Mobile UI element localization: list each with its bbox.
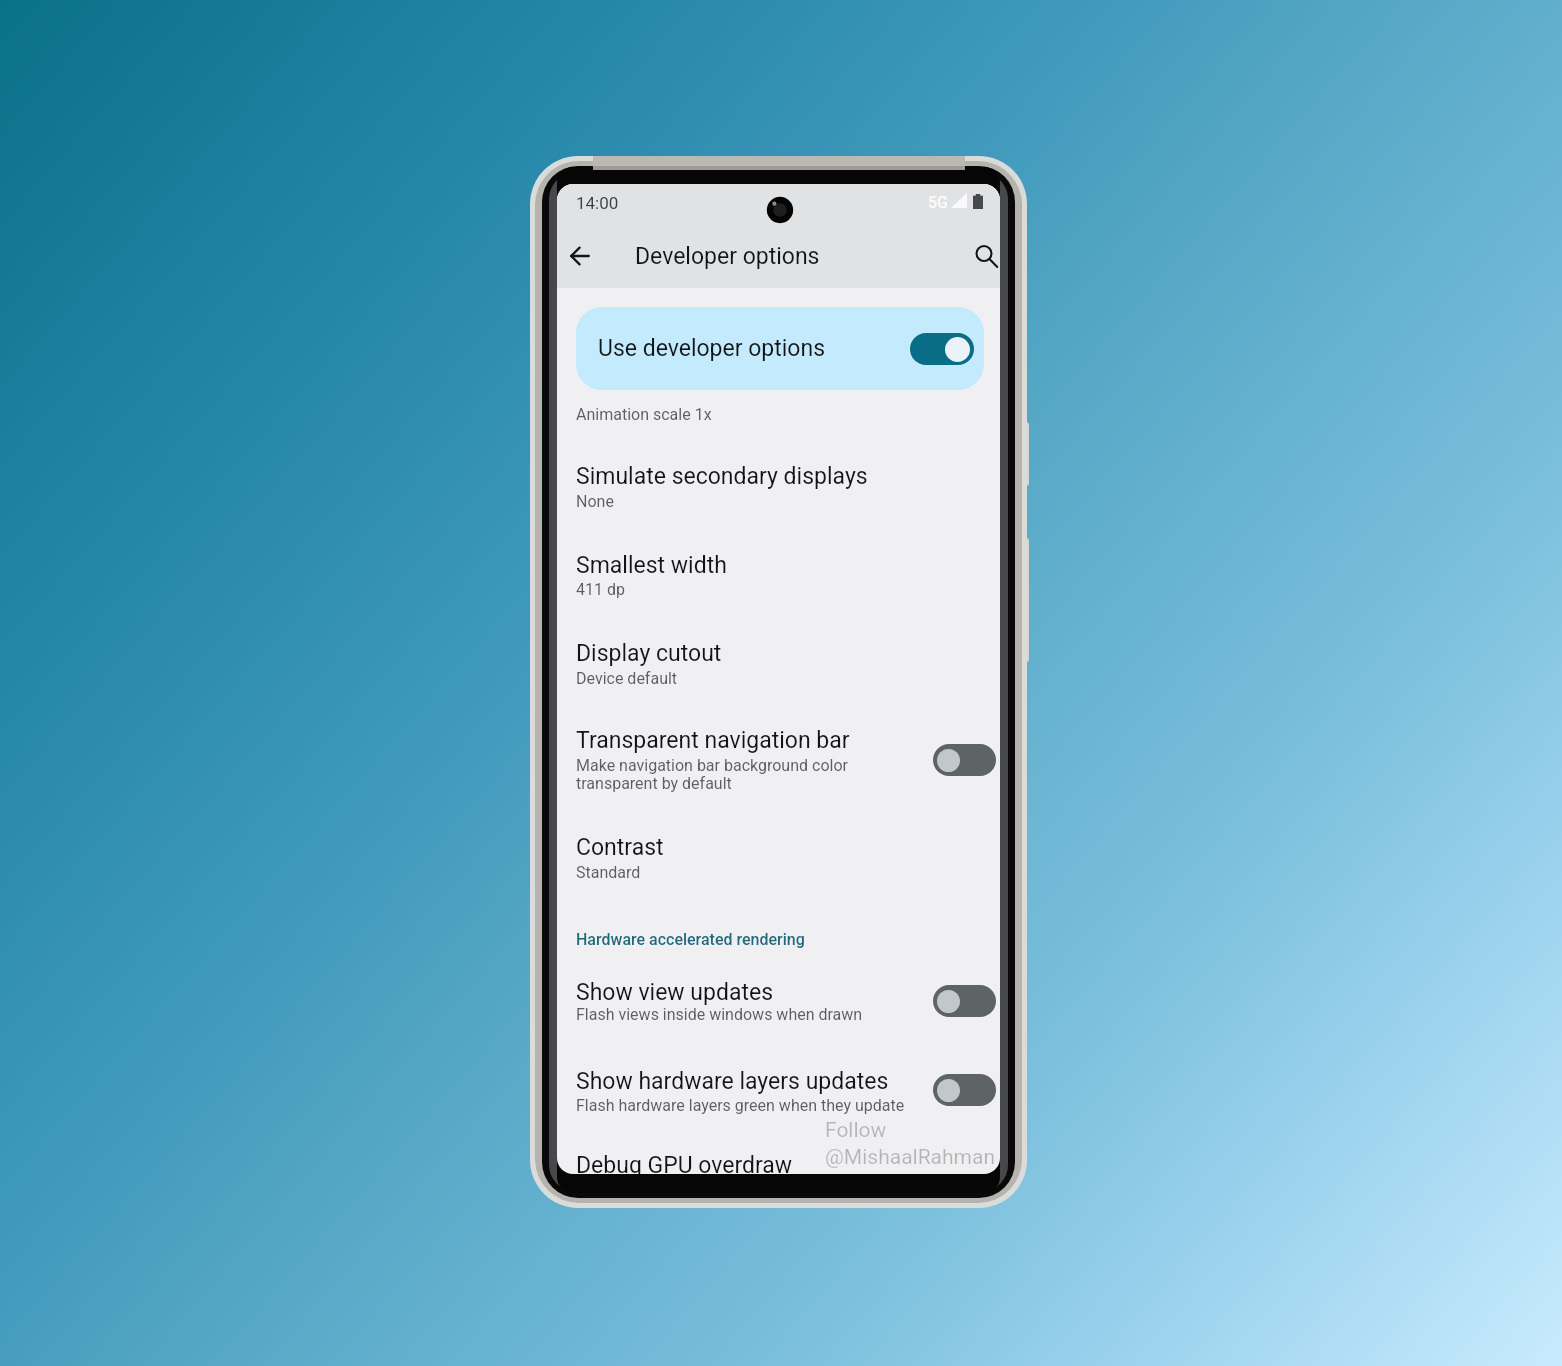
staticText: Make navigation bar background color tra…	[576, 756, 848, 793]
staticText: Standard	[576, 863, 641, 882]
button[interactable]: Use developer options	[576, 307, 984, 390]
staticText: 411 dp	[576, 580, 625, 599]
button[interactable]: Simulate secondary displays	[557, 449, 1000, 521]
staticText: Show view updates	[576, 979, 774, 1006]
staticText: None	[576, 492, 614, 511]
staticText: Transparent navigation bar	[576, 727, 850, 754]
button[interactable]: Contrast	[557, 820, 1000, 892]
staticText: Display cutout	[576, 640, 722, 667]
button[interactable]: Display cutout	[557, 626, 1000, 698]
staticText: 5G	[928, 193, 948, 212]
staticText: Flash views inside windows when drawn	[576, 1005, 863, 1024]
button[interactable]: Transparent navigation bar	[557, 713, 1000, 785]
staticText: Flash hardware layers green when they up…	[576, 1096, 905, 1115]
button[interactable]: Show view updates toggle	[933, 985, 996, 1017]
staticText: Contrast	[576, 834, 664, 861]
button[interactable]: Show hardware layers updates toggle	[933, 1074, 996, 1106]
staticText: Smallest width	[576, 552, 727, 579]
button[interactable]: Use developer options toggle	[910, 333, 974, 365]
staticText: Use developer options	[598, 335, 826, 362]
staticText: Hardware accelerated rendering	[576, 930, 805, 949]
button[interactable]: Debug GPU overdraw	[557, 1138, 1000, 1174]
button[interactable]: Navigate up	[560, 236, 600, 276]
button[interactable]: Transparent navigation bar toggle	[933, 744, 996, 776]
button[interactable]: Search	[966, 236, 1000, 276]
staticText: Developer options	[635, 243, 820, 270]
staticText: Animation scale 1x	[576, 405, 712, 424]
staticText: Debug GPU overdraw	[576, 1152, 793, 1174]
staticText: Show hardware layers updates	[576, 1068, 889, 1095]
staticText: @MishaalRahman	[825, 1145, 996, 1170]
button[interactable]: Smallest width	[557, 538, 1000, 609]
staticText: Device default	[576, 669, 678, 688]
button[interactable]: Show hardware layers updates	[557, 1054, 1000, 1125]
staticText: Follow	[825, 1118, 887, 1143]
button[interactable]: Show view updates	[557, 965, 1000, 1034]
staticText: 14:00	[576, 193, 619, 213]
staticText: Simulate secondary displays	[576, 463, 868, 490]
